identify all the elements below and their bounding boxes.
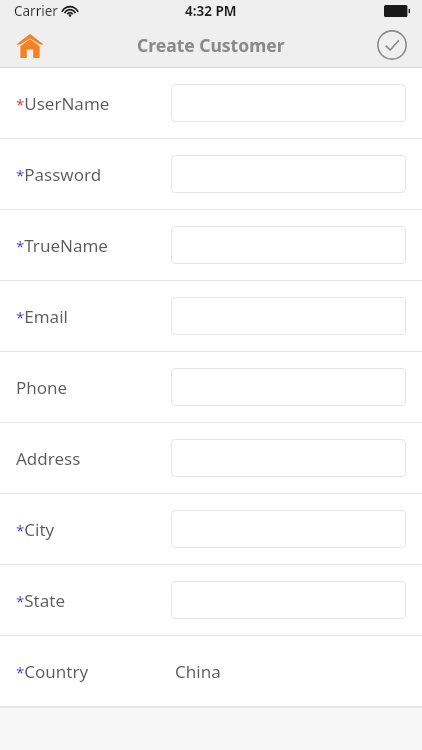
button[interactable]: *Country: [0, 636, 422, 706]
button[interactable]: Home: [8, 23, 52, 67]
button[interactable]: Confirm: [370, 23, 414, 67]
staticText: *State: [16, 589, 65, 612]
button[interactable]: *Email: [0, 281, 422, 351]
button[interactable]: *City: [0, 494, 422, 564]
staticText: *Password: [16, 163, 102, 186]
button[interactable]: Address: [0, 423, 422, 493]
staticText: *UserName: [16, 92, 110, 115]
staticText: Address: [16, 447, 81, 470]
button[interactable]: *Password: [0, 139, 422, 209]
staticText: China: [175, 660, 221, 683]
button[interactable]: *TrueName: [0, 210, 422, 280]
staticText: Phone: [16, 376, 68, 399]
staticText: *City: [16, 518, 55, 541]
staticText: Create Customer: [137, 33, 285, 57]
button[interactable]: *State: [0, 565, 422, 635]
button[interactable]: Phone: [0, 352, 422, 422]
staticText: *Email: [16, 305, 68, 328]
staticText: *TrueName: [16, 234, 108, 257]
staticText: 4:32 PM: [185, 2, 237, 20]
staticText: *Country: [16, 660, 89, 683]
staticText: Carrier: [14, 2, 58, 20]
button[interactable]: *UserName: [0, 68, 422, 138]
